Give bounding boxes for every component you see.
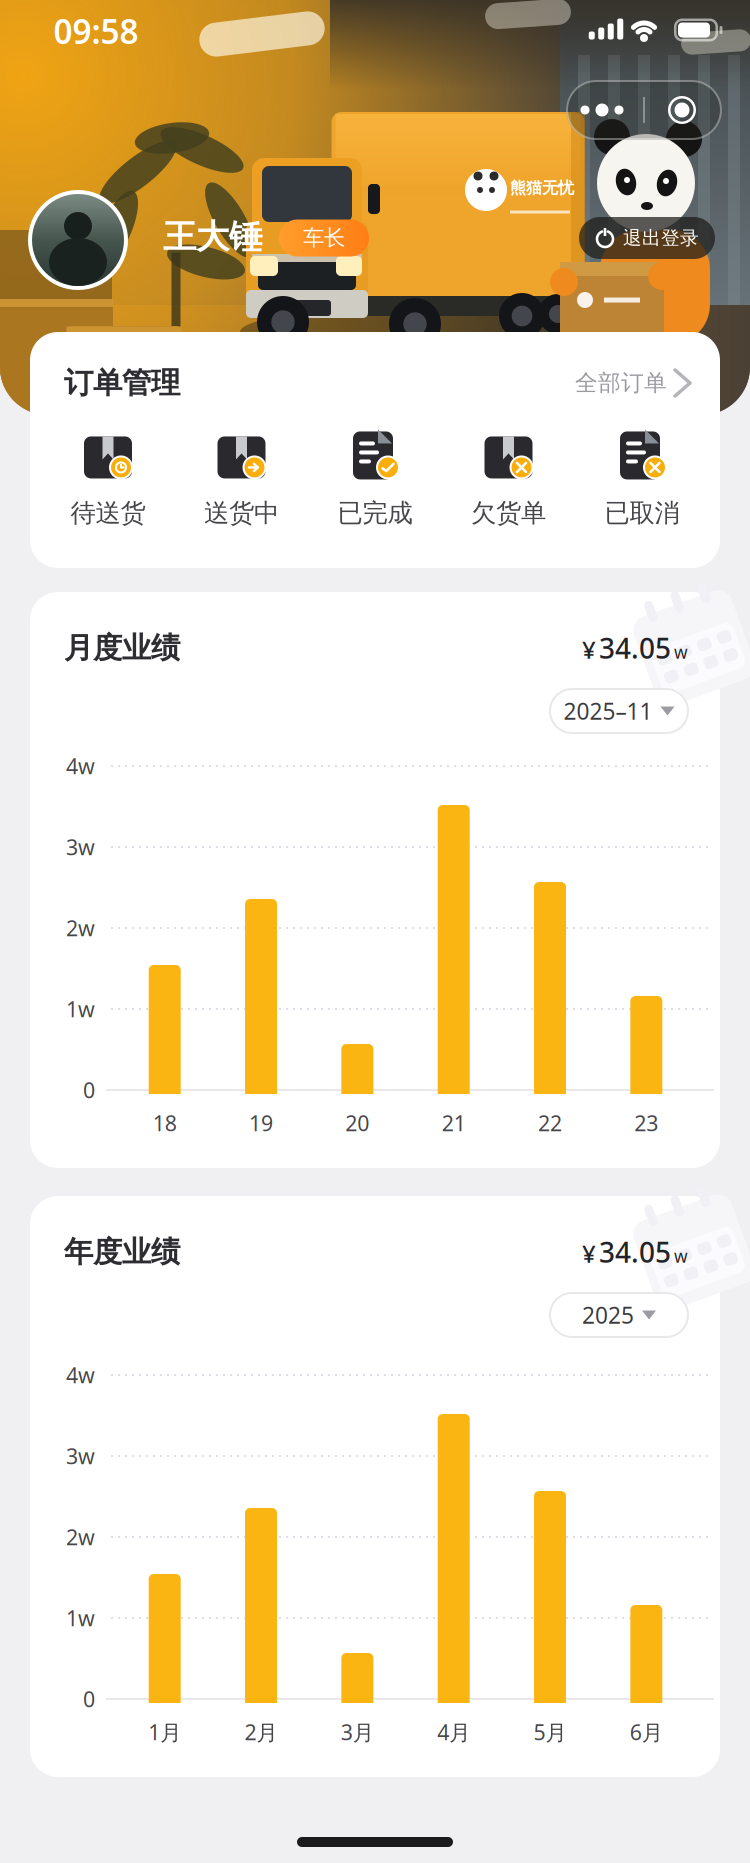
staticText: 车长 xyxy=(303,225,345,251)
staticText: 4w xyxy=(66,1361,95,1389)
staticText: 21 xyxy=(442,1109,466,1137)
button[interactable]: 待送货 xyxy=(43,431,173,528)
button[interactable]: 退出登录 xyxy=(579,217,715,259)
staticText: 送货中 xyxy=(204,497,279,528)
staticText: 19 xyxy=(249,1109,273,1137)
staticText: 34.05 xyxy=(599,629,671,667)
staticText: 0 xyxy=(83,1076,95,1104)
staticText: 0 xyxy=(83,1685,95,1713)
staticText: 2025 xyxy=(582,1300,634,1330)
staticText: 熊猫无忧 xyxy=(510,178,574,198)
staticText: 退出登录 xyxy=(623,226,699,249)
staticText: 4月 xyxy=(437,1718,470,1746)
staticText: 5月 xyxy=(533,1718,566,1746)
staticText: w xyxy=(674,1245,688,1268)
staticText: 18 xyxy=(153,1109,177,1137)
staticText: 欠货单 xyxy=(471,497,546,528)
button[interactable]: 欠货单 xyxy=(443,431,573,528)
staticText: 34.05 xyxy=(599,1233,671,1271)
staticText: 已完成 xyxy=(337,497,412,528)
button[interactable]: 已取消 xyxy=(577,431,707,528)
staticText: 王大锤 xyxy=(163,216,262,257)
staticText: 年度业绩 xyxy=(64,1234,180,1270)
staticText: 2w xyxy=(66,914,95,942)
staticText: ¥ xyxy=(582,1238,596,1269)
staticText: 3月 xyxy=(341,1718,374,1746)
staticText: 22 xyxy=(538,1109,562,1137)
staticText: 订单管理 xyxy=(64,365,180,401)
staticText: 月度业绩 xyxy=(64,630,180,666)
button[interactable]: 2025–11 xyxy=(549,688,689,734)
staticText: 4w xyxy=(66,752,95,780)
staticText: 23 xyxy=(634,1109,658,1137)
staticText: 6月 xyxy=(630,1718,663,1746)
staticText: 09:58 xyxy=(53,9,138,53)
button[interactable]: More / Minimize xyxy=(566,80,722,140)
staticText: 2月 xyxy=(244,1718,277,1746)
staticText: ¥ xyxy=(582,634,596,665)
button[interactable]: 送货中 xyxy=(176,431,306,528)
staticText: 3w xyxy=(66,833,95,861)
staticText: 1w xyxy=(66,995,95,1023)
button[interactable]: 全部订单 xyxy=(520,369,690,397)
staticText: 20 xyxy=(345,1109,369,1137)
staticText: 全部订单 xyxy=(575,369,667,397)
staticText: 2w xyxy=(66,1523,95,1551)
button[interactable]: 2025 xyxy=(549,1292,689,1338)
staticText: 3w xyxy=(66,1442,95,1470)
staticText: 1月 xyxy=(148,1718,181,1746)
staticText: 已取消 xyxy=(604,497,679,528)
staticText: 1w xyxy=(66,1604,95,1632)
staticText: 待送货 xyxy=(70,497,145,528)
staticText: w xyxy=(674,641,688,664)
staticText: 2025–11 xyxy=(563,696,652,726)
button[interactable]: 已完成 xyxy=(310,431,440,528)
